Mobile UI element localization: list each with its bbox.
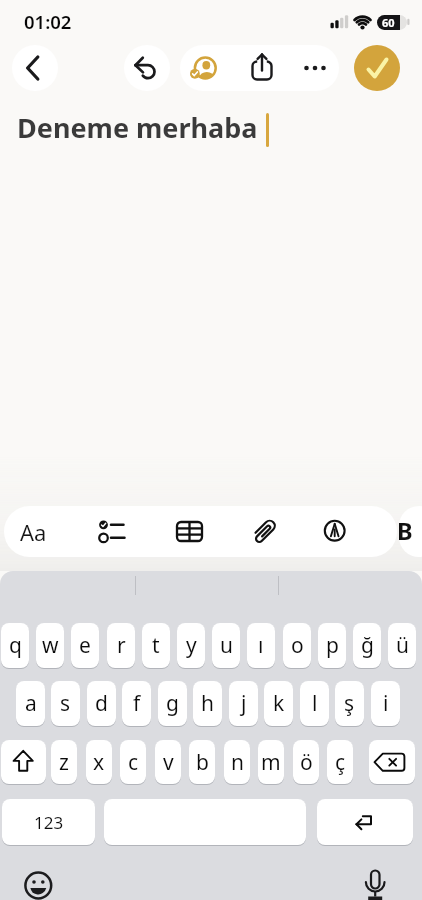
button[interactable]: ı: [247, 623, 275, 668]
button[interactable]: t: [142, 623, 170, 668]
button[interactable]: h: [193, 681, 222, 726]
button[interactable]: z: [51, 740, 77, 784]
button[interactable]: [12, 45, 58, 91]
button[interactable]: i: [371, 681, 400, 726]
staticText: s: [60, 689, 71, 718]
button[interactable]: r: [107, 623, 135, 668]
button[interactable]: f: [122, 681, 151, 726]
button[interactable]: [104, 799, 306, 845]
staticText: i: [383, 689, 389, 718]
button[interactable]: m: [258, 740, 284, 784]
button[interactable]: [20, 866, 56, 900]
staticText: j: [241, 689, 247, 718]
button[interactable]: e: [71, 623, 99, 668]
button[interactable]: [1, 740, 46, 784]
staticText: y: [186, 631, 197, 660]
staticText: ç: [335, 748, 346, 777]
staticText: e: [79, 631, 91, 660]
staticText: z: [59, 748, 69, 777]
button[interactable]: k: [264, 681, 293, 726]
button[interactable]: [354, 45, 400, 91]
staticText: r: [117, 631, 126, 660]
staticText: Aa: [20, 517, 47, 547]
button[interactable]: c: [120, 740, 146, 784]
button[interactable]: w: [36, 623, 64, 668]
button[interactable]: [314, 508, 356, 555]
staticText: v: [163, 748, 174, 777]
button[interactable]: g: [158, 681, 187, 726]
button[interactable]: [12, 508, 60, 555]
button[interactable]: j: [229, 681, 258, 726]
staticText: l: [312, 689, 318, 718]
button[interactable]: 123: [2, 799, 95, 845]
button[interactable]: b: [189, 740, 215, 784]
button[interactable]: [244, 508, 288, 555]
staticText: c: [128, 748, 139, 777]
staticText: m: [261, 748, 281, 777]
button[interactable]: a: [16, 681, 45, 726]
button[interactable]: u: [212, 623, 240, 668]
staticText: k: [273, 689, 285, 718]
button[interactable]: o: [283, 623, 311, 668]
button[interactable]: ğ: [353, 623, 381, 668]
staticText: ö: [300, 748, 313, 777]
staticText: ü: [396, 631, 409, 660]
button[interactable]: [317, 799, 413, 845]
button[interactable]: [124, 45, 170, 91]
button[interactable]: ç: [327, 740, 353, 784]
button[interactable]: p: [318, 623, 346, 668]
staticText: Deneme merhaba: [17, 109, 258, 146]
staticText: 60: [382, 15, 395, 30]
staticText: u: [220, 631, 233, 660]
button[interactable]: ö: [293, 740, 319, 784]
button[interactable]: [166, 508, 212, 555]
button[interactable]: [369, 740, 415, 784]
staticText: t: [152, 631, 160, 660]
button[interactable]: l: [300, 681, 329, 726]
staticText: n: [231, 748, 244, 777]
staticText: ı: [258, 631, 264, 660]
staticText: h: [201, 689, 214, 718]
staticText: d: [95, 689, 108, 718]
staticText: 01:02: [24, 9, 72, 34]
staticText: q: [9, 631, 22, 660]
staticText: g: [166, 689, 179, 718]
button[interactable]: n: [224, 740, 250, 784]
button[interactable]: y: [177, 623, 205, 668]
staticText: a: [25, 689, 37, 718]
staticText: ş: [344, 689, 355, 718]
button[interactable]: [390, 508, 420, 555]
staticText: 123: [34, 811, 64, 834]
staticText: p: [326, 631, 339, 660]
staticText: B: [397, 515, 413, 547]
staticText: w: [42, 631, 59, 660]
staticText: o: [291, 631, 304, 660]
button[interactable]: [293, 48, 335, 88]
staticText: f: [133, 689, 141, 718]
button[interactable]: [356, 862, 392, 900]
button[interactable]: [88, 508, 134, 555]
button[interactable]: s: [51, 681, 80, 726]
button[interactable]: v: [155, 740, 181, 784]
staticText: x: [93, 748, 105, 777]
button[interactable]: [186, 48, 228, 88]
staticText: ğ: [361, 631, 374, 660]
button[interactable]: q: [1, 623, 29, 668]
button[interactable]: x: [86, 740, 112, 784]
button[interactable]: ü: [388, 623, 416, 668]
button[interactable]: [240, 48, 284, 88]
button[interactable]: ş: [335, 681, 364, 726]
staticText: b: [196, 748, 209, 777]
button[interactable]: d: [87, 681, 116, 726]
